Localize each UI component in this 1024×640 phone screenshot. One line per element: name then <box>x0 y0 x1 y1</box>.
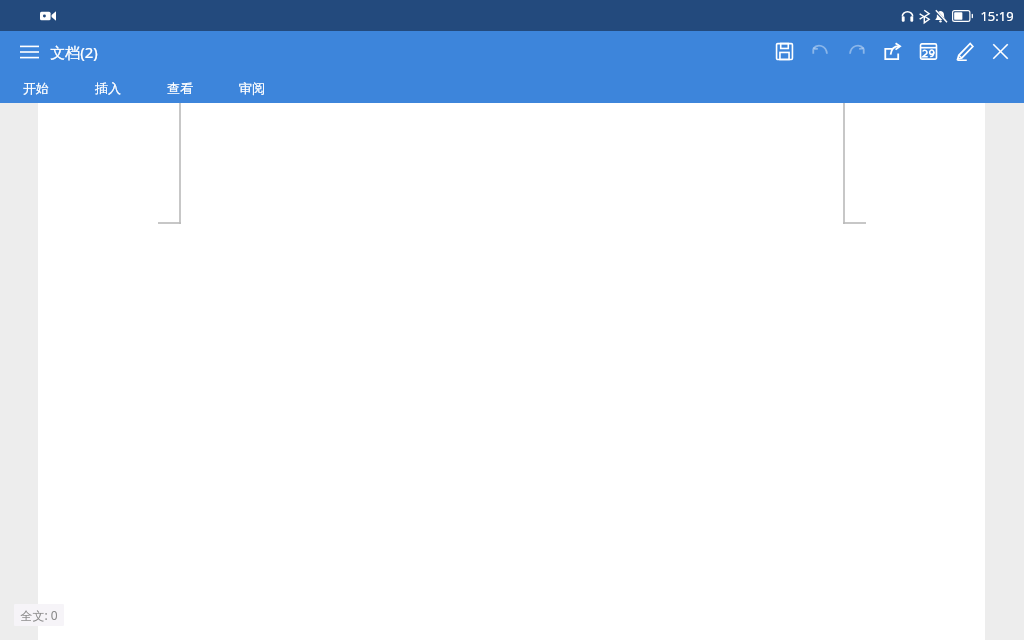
button[interactable]: Save <box>766 31 802 72</box>
staticText: 开始 <box>23 80 49 96</box>
button[interactable]: 审阅 <box>216 72 288 103</box>
button[interactable]: Calendar <box>910 31 946 72</box>
staticText: 文档(2) <box>50 42 98 62</box>
button[interactable]: 全文: 0 <box>14 604 64 626</box>
button[interactable]: Redo <box>838 31 874 72</box>
button[interactable]: 插入 <box>72 72 144 103</box>
button[interactable]: Share <box>874 31 910 72</box>
button[interactable]: 开始 <box>0 72 72 103</box>
staticText: 审阅 <box>239 80 265 96</box>
button[interactable]: Undo <box>802 31 838 72</box>
button[interactable]: 查看 <box>144 72 216 103</box>
button[interactable]: Close <box>982 31 1018 72</box>
button[interactable]: 文档(2) <box>50 42 98 62</box>
staticText: 全文: 0 <box>20 607 58 623</box>
button[interactable]: Edit <box>946 31 982 72</box>
staticText: 15:19 <box>980 7 1014 25</box>
staticText: 查看 <box>167 80 193 96</box>
button[interactable]: Menu <box>12 35 46 69</box>
staticText: 插入 <box>95 80 121 96</box>
